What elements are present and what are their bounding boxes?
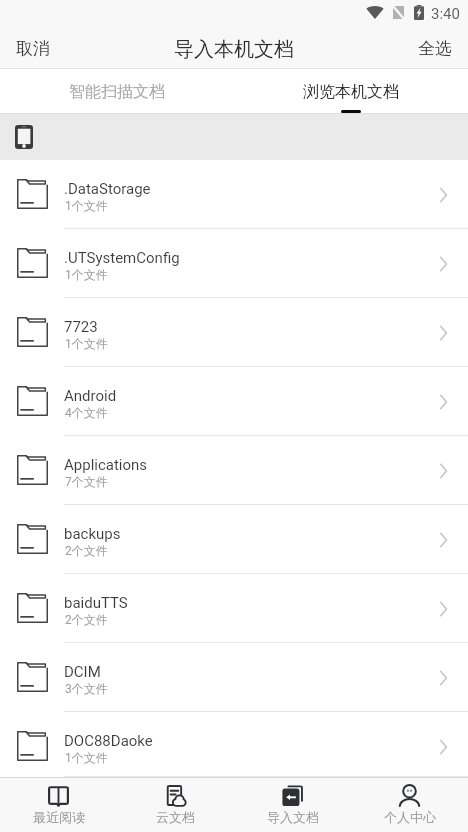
staticText: baiduTTS [64,594,128,612]
staticText: backups [64,525,121,543]
staticText: DCIM [64,663,101,681]
staticText: 3个文件 [65,681,108,696]
button[interactable]: Applications [0,436,468,505]
button[interactable]: 全选 [404,24,468,68]
staticText: 7723 [64,318,98,336]
staticText: 4个文件 [65,405,108,420]
button[interactable]: 最近阅读 [0,778,117,832]
staticText: 1个文件 [65,750,108,765]
staticText: 导入本机文档 [174,37,294,62]
button[interactable]: 取消 [0,24,64,68]
staticText: 2个文件 [65,543,108,558]
staticText: 导入文档 [267,809,319,825]
staticText: .DataStorage [64,180,151,198]
button[interactable]: baiduTTS [0,574,468,643]
button[interactable]: 导入文档 [234,778,351,832]
button[interactable]: 云文档 [117,778,234,832]
button[interactable]: Android [0,367,468,436]
staticText: 2个文件 [65,612,108,627]
button[interactable]: .UTSystemConfig [0,229,468,298]
staticText: 3:40 [431,5,460,23]
button[interactable]: DOC88Daoke [0,712,468,777]
button[interactable]: DCIM [0,643,468,712]
button[interactable]: backups [0,505,468,574]
staticText: Applications [64,456,148,474]
staticText: 1个文件 [65,267,108,282]
staticText: DOC88Daoke [64,732,153,750]
staticText: 云文档 [156,809,195,825]
button[interactable]: Internal storage [0,114,468,160]
staticText: 1个文件 [65,336,108,351]
button[interactable]: 7723 [0,298,468,367]
staticText: Android [64,387,117,405]
button[interactable]: 个人中心 [351,778,468,832]
staticText: .UTSystemConfig [64,249,180,267]
staticText: 1个文件 [65,198,108,213]
staticText: 个人中心 [384,809,436,825]
button[interactable]: .DataStorage [0,160,468,229]
staticText: 全选 [418,38,452,59]
staticText: 取消 [16,38,50,59]
staticText: 智能扫描文档 [69,82,165,102]
button[interactable]: 智能扫描文档 [0,69,234,113]
staticText: 最近阅读 [33,809,85,825]
staticText: 浏览本机文档 [303,82,399,102]
staticText: 7个文件 [65,474,108,489]
button[interactable]: 浏览本机文档 [234,69,468,113]
